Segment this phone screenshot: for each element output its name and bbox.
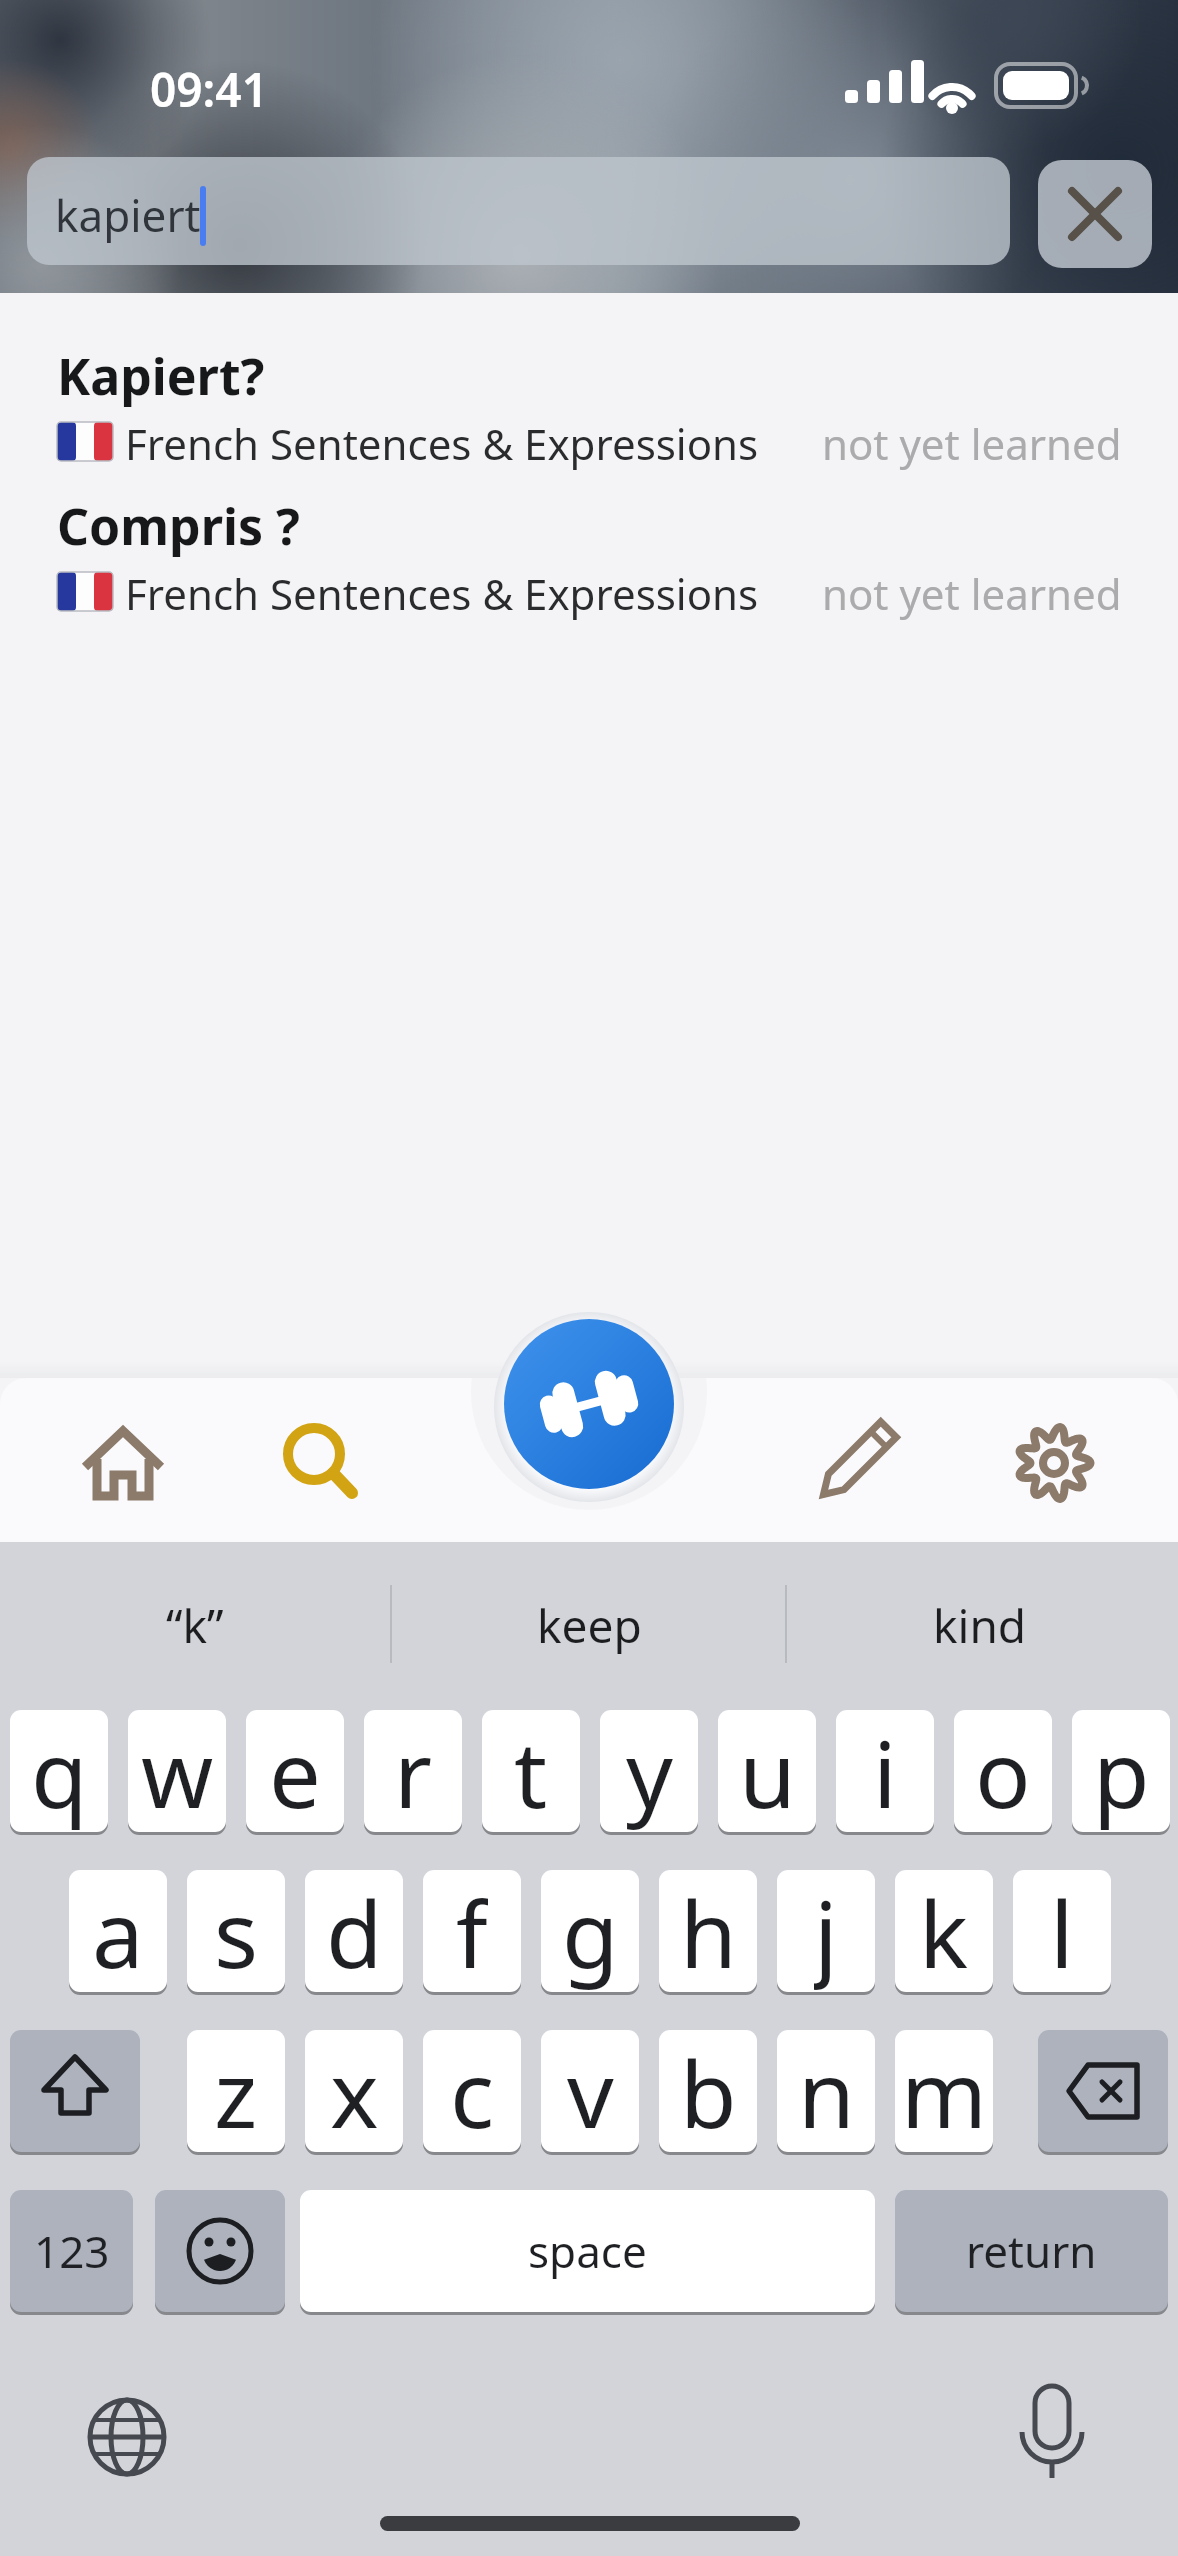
button[interactable] — [1002, 2380, 1102, 2480]
button[interactable]: q — [10, 1710, 108, 1832]
button[interactable]: 123 — [10, 2190, 133, 2312]
staticText: j — [814, 1870, 838, 1992]
button[interactable]: r — [364, 1710, 462, 1832]
staticText: m — [901, 2030, 988, 2152]
button[interactable] — [27, 157, 1010, 265]
button[interactable]: v — [541, 2030, 639, 2152]
staticText: d — [326, 1870, 383, 1992]
staticText: b — [680, 2030, 737, 2152]
button[interactable]: keep — [404, 1585, 774, 1665]
button[interactable]: kind — [800, 1585, 1160, 1665]
staticText: not yet learned — [822, 565, 1122, 622]
button[interactable]: d — [305, 1870, 403, 1992]
button[interactable] — [1038, 2030, 1168, 2152]
staticText: not yet learned — [822, 415, 1122, 472]
button[interactable]: f — [423, 1870, 521, 1992]
staticText: o — [975, 1710, 1031, 1832]
staticText: f — [456, 1870, 488, 1992]
staticText: return — [966, 2221, 1097, 2281]
staticText: v — [567, 2030, 614, 2152]
button[interactable]: y — [600, 1710, 698, 1832]
button[interactable]: a — [69, 1870, 167, 1992]
button[interactable]: s — [187, 1870, 285, 1992]
staticText: t — [514, 1710, 548, 1832]
staticText: s — [214, 1870, 259, 1992]
staticText: k — [919, 1870, 969, 1992]
button[interactable]: t — [482, 1710, 580, 1832]
button[interactable]: n — [777, 2030, 875, 2152]
staticText: e — [269, 1710, 321, 1832]
button[interactable]: h — [659, 1870, 757, 1992]
button[interactable]: z — [187, 2030, 285, 2152]
button[interactable] — [504, 1319, 674, 1489]
staticText: h — [680, 1870, 737, 1992]
staticText: keep — [537, 1594, 642, 1657]
staticText: g — [562, 1870, 619, 1992]
staticText: y — [626, 1710, 673, 1832]
staticText: n — [798, 2030, 855, 2152]
staticText: “k” — [166, 1594, 224, 1657]
staticText: l — [1050, 1870, 1074, 1992]
button[interactable]: o — [954, 1710, 1052, 1832]
button[interactable] — [790, 1400, 920, 1530]
staticText: 123 — [34, 2221, 110, 2281]
staticText: p — [1093, 1710, 1150, 1832]
button[interactable]: l — [1013, 1870, 1111, 1992]
staticText: kapiert — [55, 185, 201, 245]
staticText: French Sentences & Expressions — [125, 415, 759, 472]
staticText: r — [394, 1710, 432, 1832]
staticText: space — [528, 2221, 647, 2281]
staticText: q — [31, 1710, 88, 1832]
button[interactable] — [1038, 160, 1152, 268]
staticText: c — [450, 2030, 495, 2152]
button[interactable]: p — [1072, 1710, 1170, 1832]
button[interactable]: j — [777, 1870, 875, 1992]
staticText: u — [739, 1710, 796, 1832]
staticText: French Sentences & Expressions — [125, 565, 759, 622]
staticText: 09:41 — [150, 58, 268, 121]
button[interactable]: m — [895, 2030, 993, 2152]
button[interactable]: w — [128, 1710, 226, 1832]
staticText: kind — [933, 1594, 1027, 1657]
staticText: i — [873, 1710, 897, 1832]
button[interactable]: c — [423, 2030, 521, 2152]
button[interactable]: x — [305, 2030, 403, 2152]
button[interactable] — [155, 2190, 285, 2312]
staticText: x — [330, 2030, 379, 2152]
staticText: Compris ? — [57, 492, 300, 560]
staticText: z — [214, 2030, 258, 2152]
button[interactable]: return — [895, 2190, 1168, 2312]
staticText: a — [92, 1870, 144, 1992]
button[interactable] — [10, 2030, 140, 2152]
button[interactable]: g — [541, 1870, 639, 1992]
button[interactable]: b — [659, 2030, 757, 2152]
staticText: w — [141, 1710, 214, 1832]
button[interactable]: “k” — [20, 1585, 370, 1665]
button[interactable] — [255, 1400, 385, 1530]
button[interactable] — [990, 1400, 1120, 1530]
staticText: Kapiert? — [57, 342, 265, 410]
button[interactable]: i — [836, 1710, 934, 1832]
button[interactable]: space — [300, 2190, 875, 2312]
button[interactable] — [0, 330, 1178, 480]
button[interactable] — [60, 1400, 190, 1530]
button[interactable]: u — [718, 1710, 816, 1832]
button[interactable]: k — [895, 1870, 993, 1992]
button[interactable]: e — [246, 1710, 344, 1832]
button[interactable] — [77, 2387, 177, 2487]
button[interactable] — [0, 480, 1178, 630]
